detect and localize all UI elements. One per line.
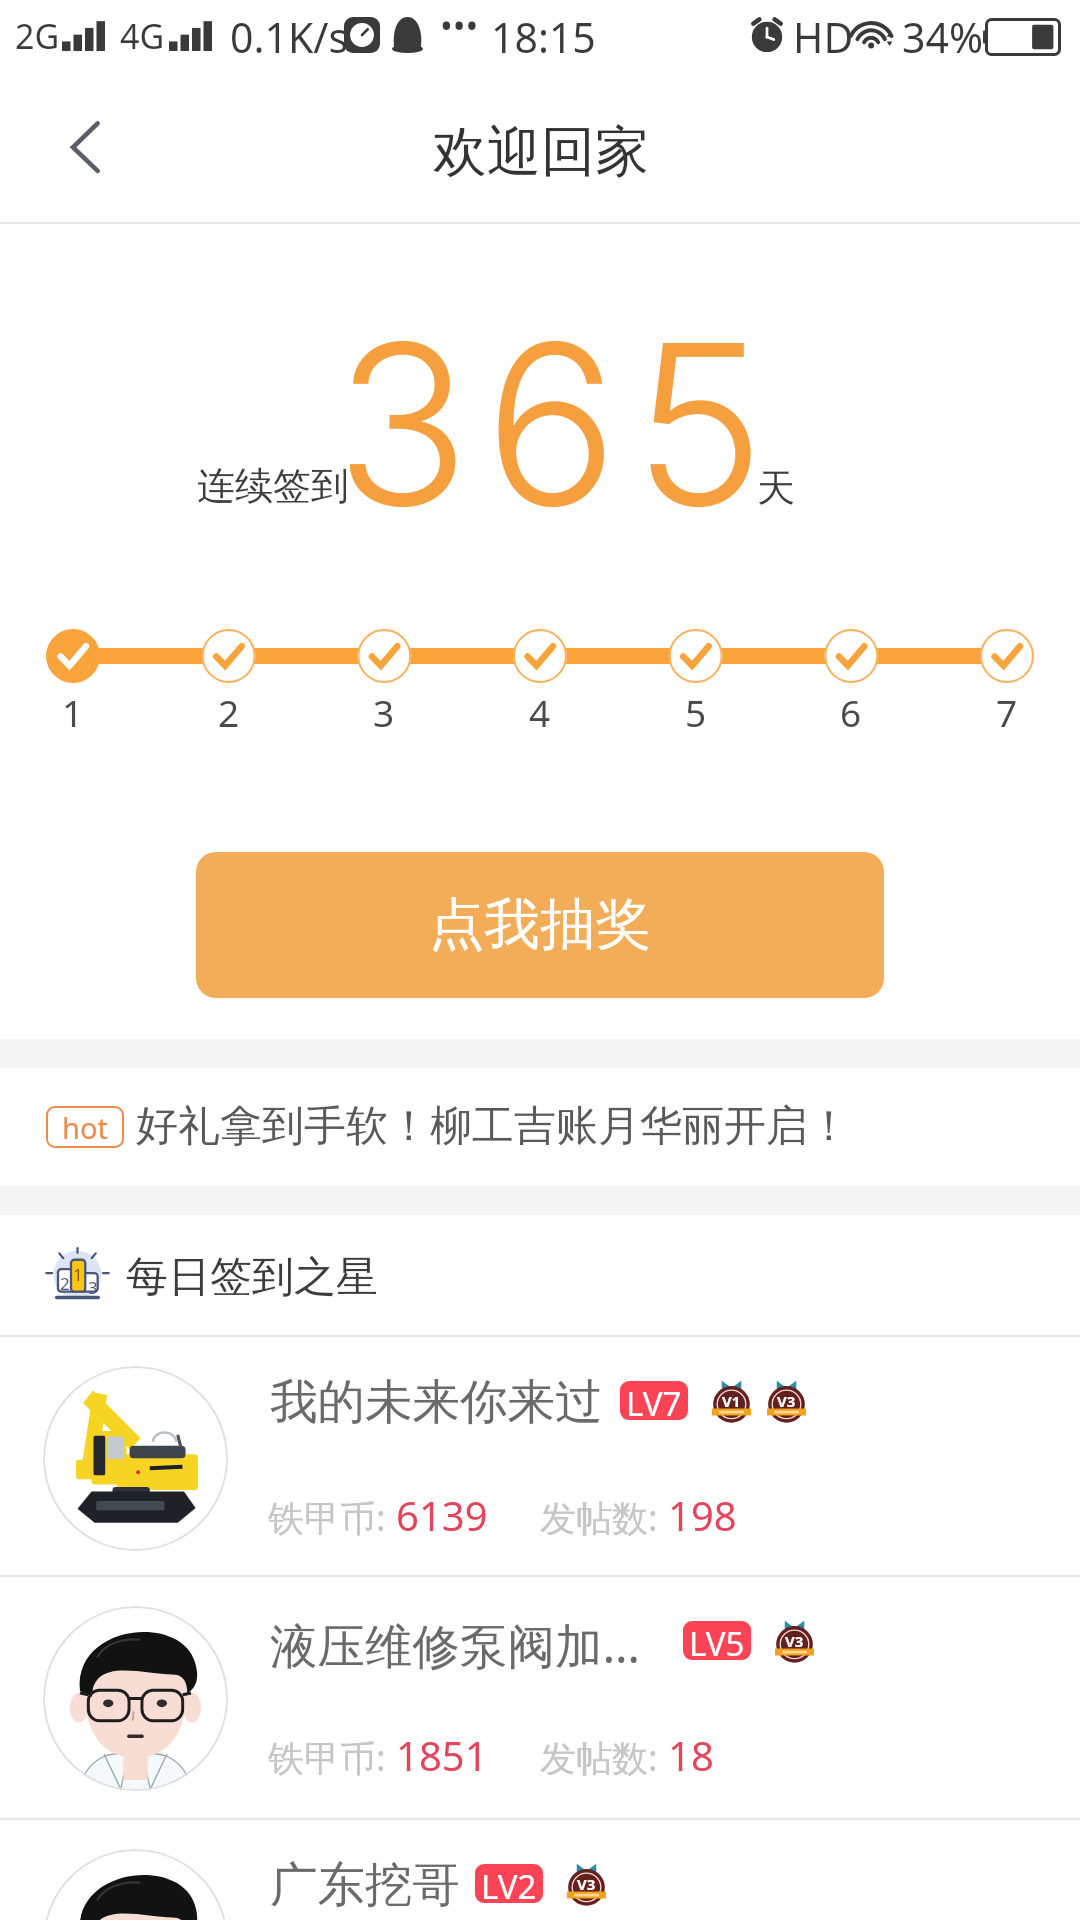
staticText: 欢迎回家 (433, 118, 649, 186)
staticText: 天 (757, 464, 795, 512)
staticText: 每日签到之星 (126, 1251, 378, 1304)
button[interactable]: 广东挖哥 (0, 1820, 1080, 1920)
button[interactable]: 点我抽奖 (196, 852, 884, 998)
button[interactable]: 我的未来你来过 (0, 1337, 1080, 1577)
staticText: V1 (722, 1391, 741, 1411)
staticText: 点我抽奖 (429, 890, 651, 960)
staticText: 4G (120, 13, 165, 59)
staticText: 3 (88, 1276, 98, 1299)
staticText: ••• (440, 2, 479, 48)
staticText: 4 (529, 687, 551, 737)
staticText: 铁甲币: (268, 1493, 396, 1542)
staticText: 0.1K/s (230, 9, 349, 65)
staticText: 18 (668, 1728, 714, 1782)
staticText: 18:15 (491, 9, 596, 65)
button[interactable]: hot (0, 1068, 1080, 1186)
staticText: V3 (577, 1874, 596, 1894)
staticText: 发帖数: (540, 1733, 668, 1782)
staticText: 1 (62, 687, 84, 737)
staticText: hot (62, 1108, 108, 1147)
staticText: 广东挖哥 (270, 1855, 460, 1915)
staticText: 2 (218, 687, 240, 737)
staticText: 5 (685, 687, 707, 737)
staticText: 液压维修泵阀加… (270, 1612, 641, 1677)
staticText: 6 (840, 687, 862, 737)
staticText: 365 (335, 290, 780, 559)
staticText: LV7 (626, 1381, 682, 1420)
staticText: 发帖数: (540, 1493, 668, 1542)
staticText: 34% (902, 9, 983, 65)
staticText: 3 (373, 687, 395, 737)
staticText: 好礼拿到手软！柳工吉账月华丽开启！ (136, 1100, 850, 1153)
staticText: 7 (996, 687, 1018, 737)
button[interactable]: Back (40, 93, 128, 181)
staticText: 6139 (396, 1488, 488, 1542)
staticText: LV5 (689, 1621, 745, 1660)
staticText: 我的未来你来过 (270, 1372, 603, 1432)
staticText: 连续签到 (197, 462, 349, 510)
staticText: V3 (785, 1631, 804, 1651)
staticText: HD (793, 9, 854, 65)
staticText: V3 (777, 1391, 796, 1411)
staticText: 2 (60, 1272, 70, 1295)
button[interactable]: 液压维修泵阀加… (0, 1577, 1080, 1817)
staticText: 铁甲币: (268, 1733, 396, 1782)
staticText: 1 (73, 1263, 83, 1286)
staticText: 1851 (396, 1728, 488, 1782)
staticText: 198 (668, 1488, 737, 1542)
staticText: LV2 (481, 1864, 537, 1903)
staticText: 2G (15, 13, 60, 59)
